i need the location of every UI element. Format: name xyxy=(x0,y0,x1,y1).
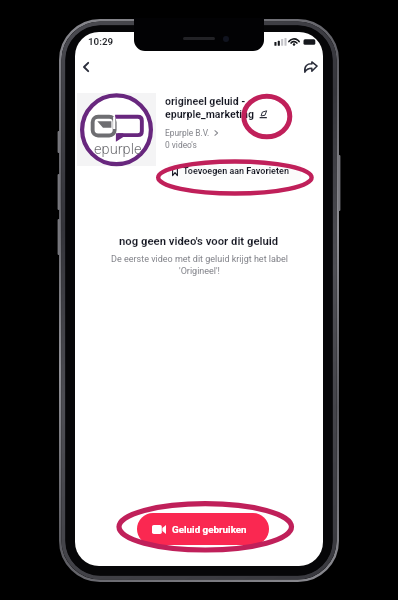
staticText: origineel geluid - xyxy=(165,95,246,107)
staticText: Geluid gebruiken xyxy=(172,524,247,535)
staticText: De eerste video met dit geluid krijgt he… xyxy=(111,254,288,276)
button[interactable]: Profile picture xyxy=(77,93,156,166)
staticText: epurple_marketing xyxy=(165,108,255,120)
button[interactable]: Geluid gebruiken xyxy=(137,513,269,545)
staticText: Toevoegen aan Favorieten xyxy=(183,166,289,177)
staticText: 0 video's xyxy=(165,140,197,150)
staticText: 10:29 xyxy=(88,36,114,47)
staticText: epurple xyxy=(94,140,142,157)
staticText: Epurple B.V. xyxy=(165,128,210,138)
staticText: nog geen video's voor dit geluid xyxy=(119,235,279,248)
button[interactable]: Edit xyxy=(255,106,271,122)
button[interactable]: Back xyxy=(75,55,97,79)
button[interactable]: Toevoegen aan Favorieten xyxy=(168,162,301,180)
button[interactable]: Share xyxy=(299,55,323,79)
